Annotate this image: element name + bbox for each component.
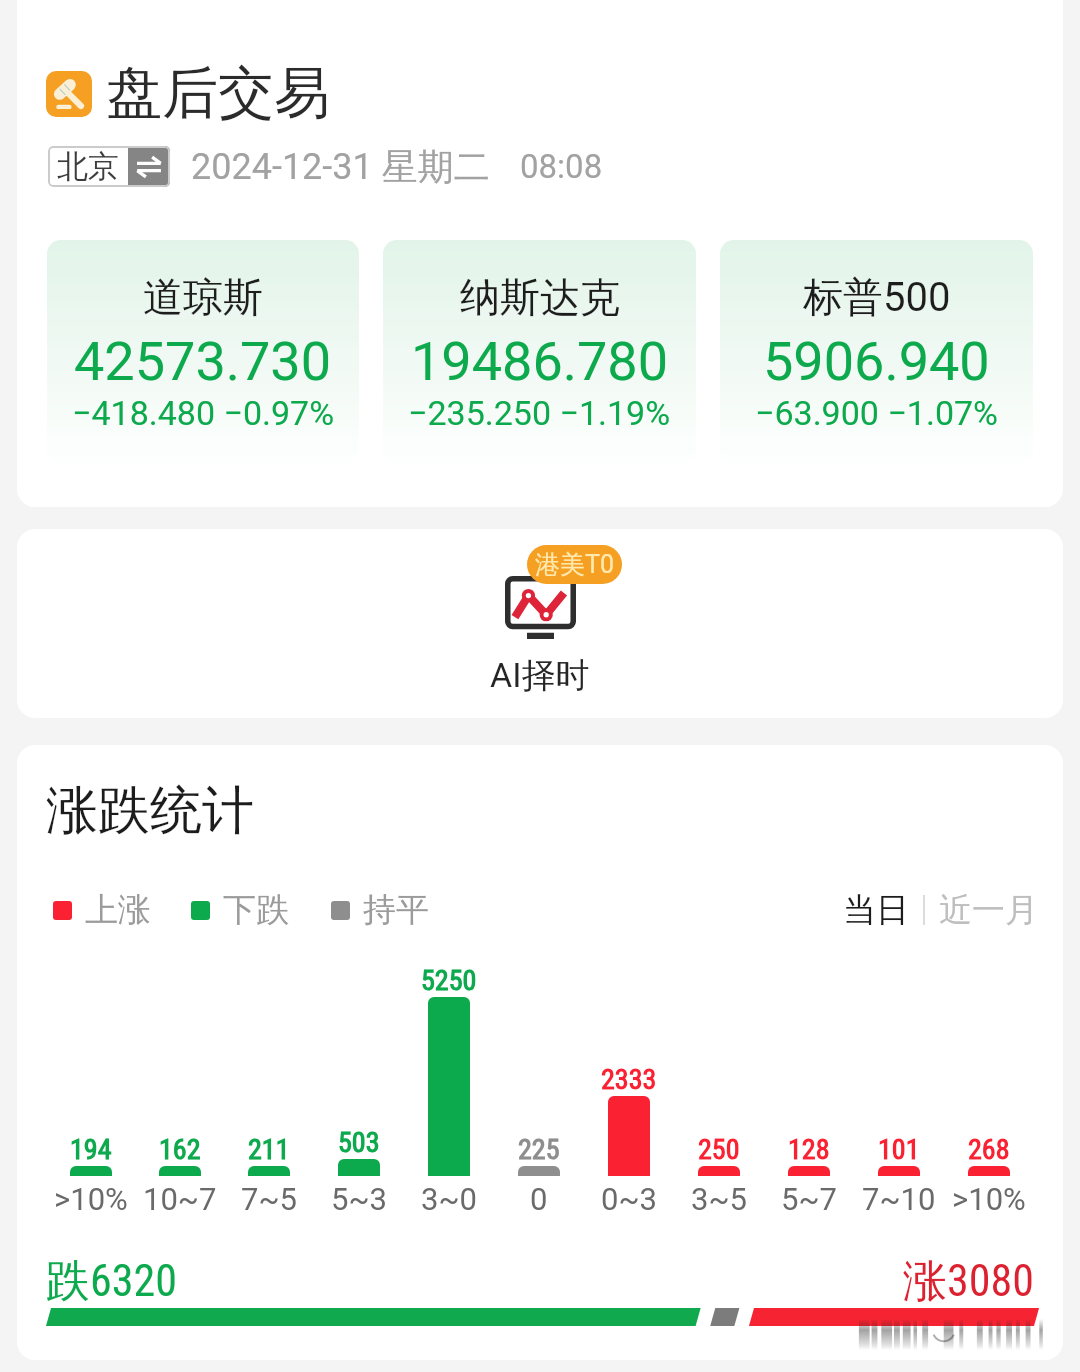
staticText: 跌6320 [46,1254,177,1309]
staticText: 上涨 [85,889,151,931]
staticText: 10~7 [143,1181,217,1217]
staticText: 19486.780 [411,330,669,393]
staticText: 211 [248,1133,290,1166]
staticText: >10% [54,1181,128,1217]
staticText: 194 [70,1133,112,1166]
button[interactable]: 道琼斯 [47,240,359,463]
button[interactable]: 下跌 [191,889,289,931]
staticText: 涨跌统计 [46,778,254,844]
staticText: 北京 [57,147,119,186]
button[interactable]: 盘后交易 [46,58,330,129]
button[interactable]: 当日 [843,889,909,931]
staticText: 下跌 [223,889,289,931]
staticText: 标普500 [803,272,951,322]
staticText: 250 [698,1133,740,1166]
staticText: 162 [159,1133,201,1166]
staticText: −418.480 −0.97% [72,393,335,433]
staticText: 101 [878,1133,920,1166]
staticText: 268 [968,1133,1010,1166]
staticText: 5~3 [331,1181,387,1217]
staticText: 持平 [363,889,429,931]
staticText: 5~7 [781,1181,837,1217]
staticText: 2333 [601,1063,657,1096]
staticText: 128 [788,1133,830,1166]
staticText: 纳斯达克 [460,272,620,322]
staticText: 5906.940 [763,330,990,393]
staticText: 涨3080 [903,1254,1034,1309]
staticText: 5250 [421,964,477,997]
button[interactable]: 上涨 [53,889,151,931]
staticText: 7~10 [862,1181,936,1217]
staticText: 道琼斯 [143,272,263,322]
staticText: 3~0 [421,1181,477,1217]
staticText: >10% [952,1181,1026,1217]
staticText: 7~5 [241,1181,297,1217]
staticText: 225 [518,1133,560,1166]
other: 盘后交易 [46,71,92,117]
staticText: 盘后交易 [106,58,330,129]
button[interactable]: 纳斯达克 [383,240,696,463]
other: 切换城市 [128,146,170,187]
button[interactable]: 港美T0 [449,545,631,697]
staticText: 0~3 [601,1181,657,1217]
button[interactable]: 北京 [48,146,170,187]
button[interactable]: 标普500 [720,240,1033,463]
staticText: 3~5 [691,1181,747,1217]
staticText: AI择时 [490,654,590,697]
staticText: 2024-12-31 星期二 [191,144,490,189]
staticText: 42573.730 [74,330,332,393]
staticText: −235.250 −1.19% [408,393,671,433]
staticText: 08:08 [520,147,603,186]
staticText: 港美T0 [535,549,614,580]
staticText: 503 [338,1126,380,1159]
staticText: 0 [530,1181,548,1217]
button[interactable]: 持平 [331,889,429,931]
staticText: −63.900 −1.07% [755,393,999,433]
button[interactable]: 近一月 [939,889,1038,931]
